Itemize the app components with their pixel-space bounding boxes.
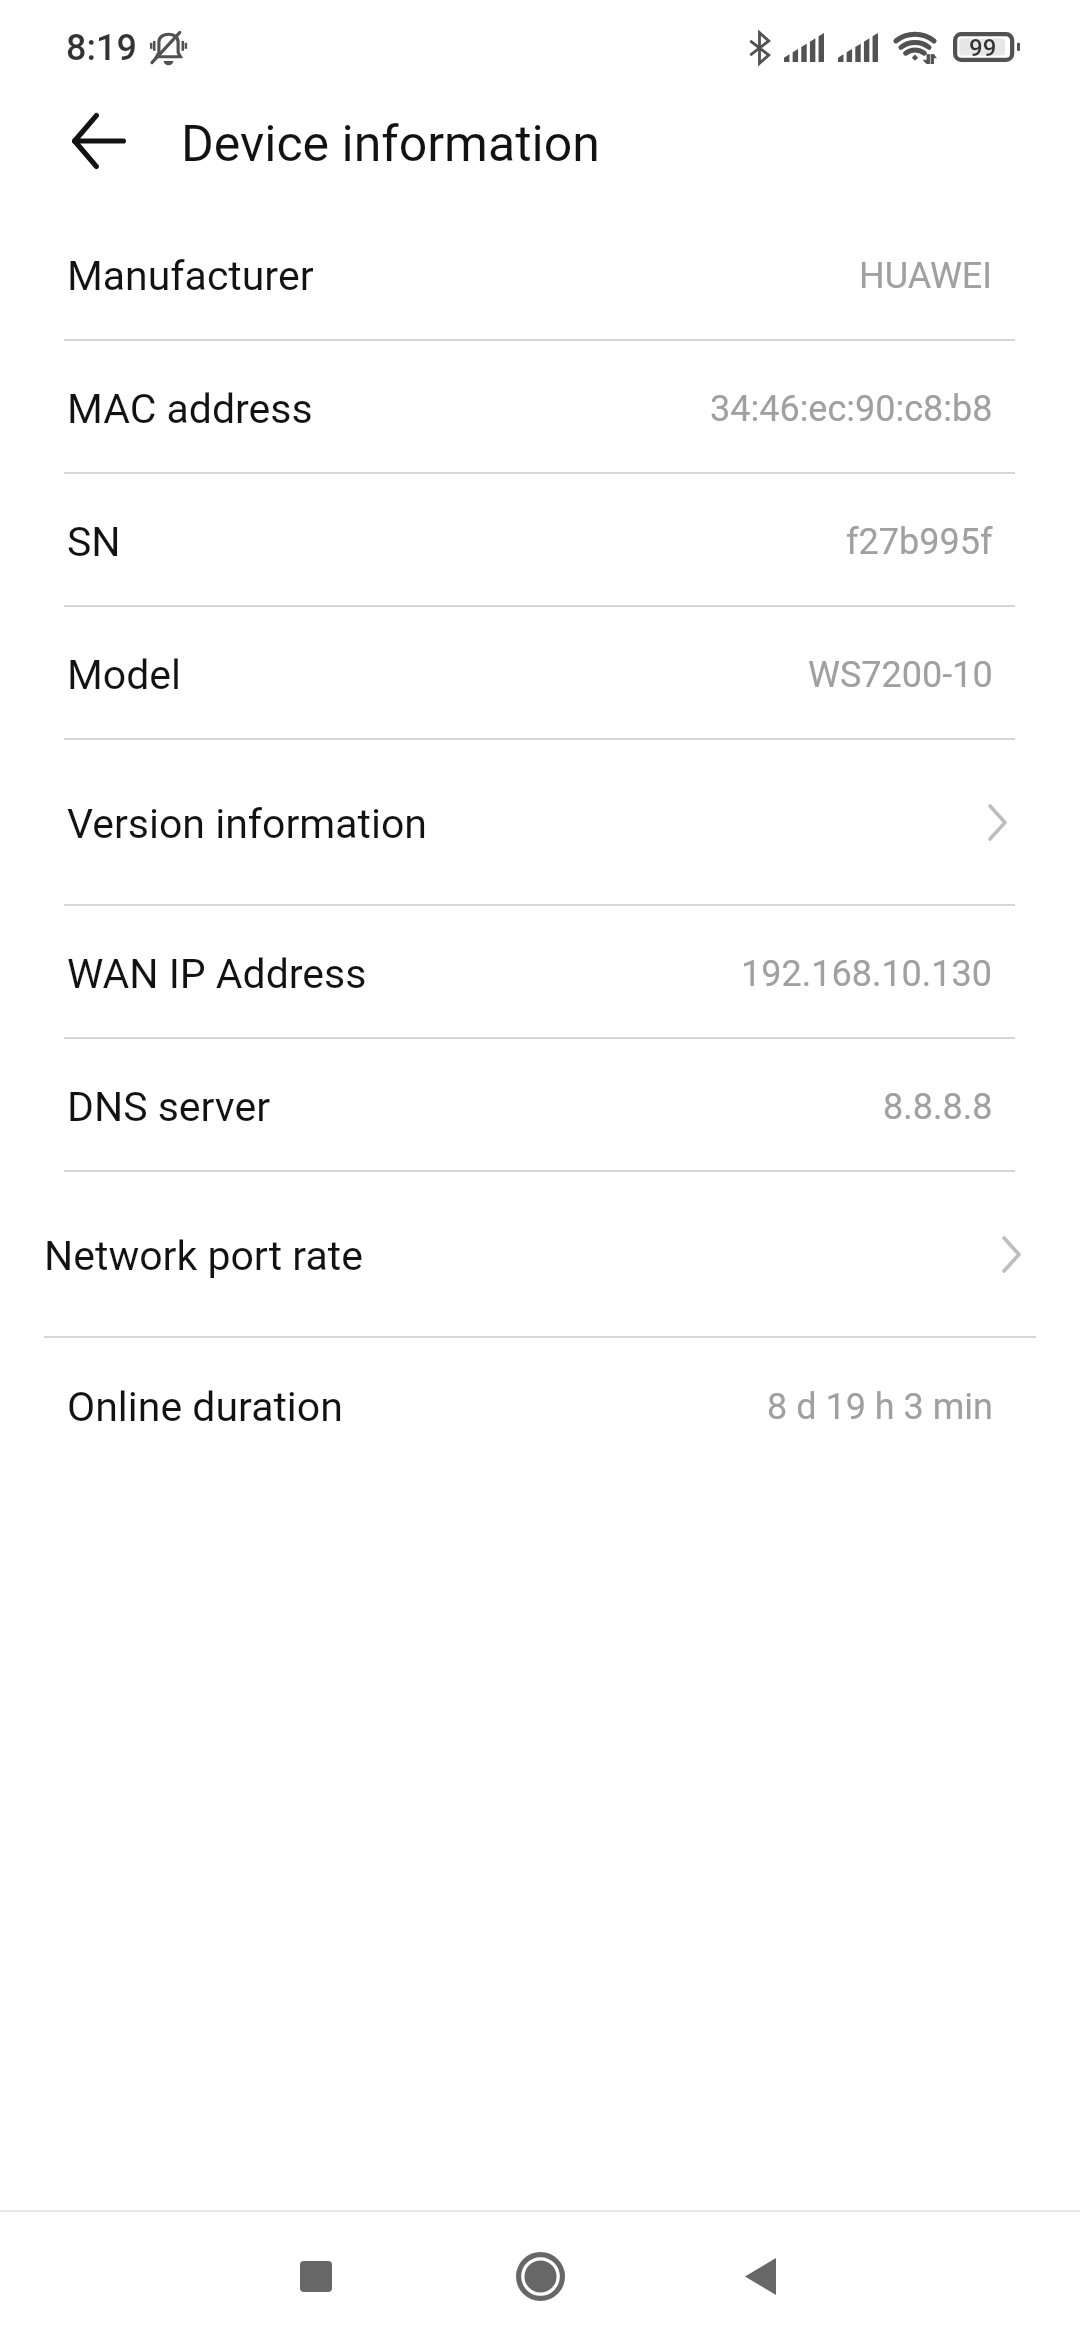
staticText: HUAWEI <box>859 255 993 297</box>
staticText: Network port rate <box>44 1232 363 1280</box>
staticText: Device information <box>181 115 600 174</box>
staticText: 192.168.10.130 <box>741 953 993 995</box>
button[interactable]: Version information <box>0 740 1080 904</box>
staticText: 34:46:ec:90:c8:b8 <box>710 388 993 430</box>
staticText: WAN IP Address <box>67 950 367 998</box>
button[interactable]: DNS server <box>0 1039 1080 1170</box>
button[interactable]: SN <box>0 474 1080 605</box>
button[interactable]: Online duration <box>0 1338 1080 1471</box>
staticText: DNS server <box>67 1083 271 1131</box>
staticText: Manufacturer <box>67 252 314 300</box>
staticText: Online duration <box>67 1383 343 1431</box>
button[interactable]: Back <box>45 87 153 195</box>
staticText: 8.8.8.8 <box>883 1086 993 1128</box>
button[interactable]: Back <box>700 2216 820 2336</box>
staticText: WS7200-10 <box>808 654 993 696</box>
staticText: f27b995f <box>846 521 993 563</box>
staticText: MAC address <box>67 385 313 433</box>
button[interactable]: Model <box>0 607 1080 738</box>
button[interactable]: MAC address <box>0 341 1080 472</box>
staticText: 8:19 <box>66 27 137 69</box>
staticText: 8 d 19 h 3 min <box>767 1386 993 1428</box>
button[interactable]: Recent apps <box>256 2216 376 2336</box>
button[interactable]: WAN IP Address <box>0 906 1080 1037</box>
staticText: Model <box>67 651 182 699</box>
staticText: SN <box>67 518 121 566</box>
button[interactable]: Manufacturer <box>0 208 1080 339</box>
staticText: 99 <box>969 34 997 62</box>
button[interactable]: Home <box>480 2216 600 2336</box>
button[interactable]: Network port rate <box>0 1172 1080 1336</box>
staticText: Version information <box>67 800 427 848</box>
